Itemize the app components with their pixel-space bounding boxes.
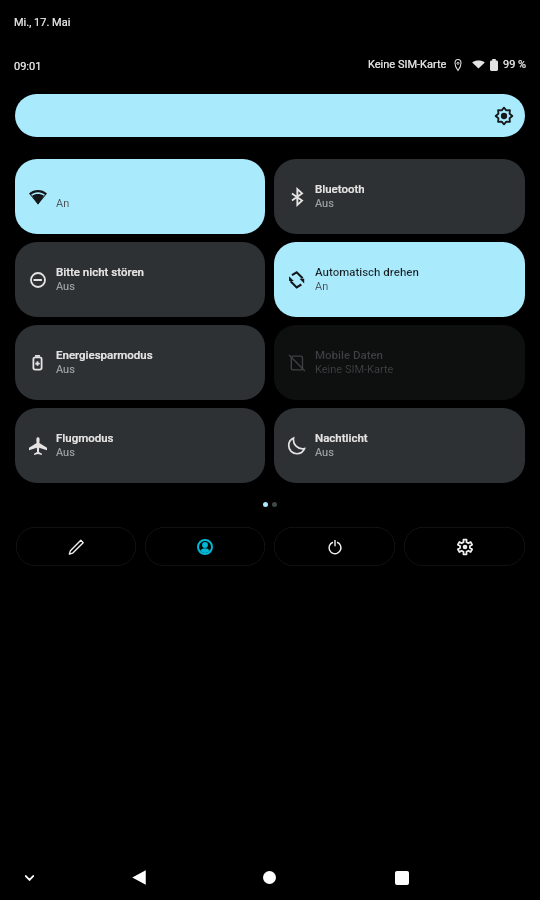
button[interactable]: Startbildschirm [251, 859, 288, 896]
staticText: Aus [56, 446, 75, 459]
staticText: Bluetooth [315, 182, 365, 195]
staticText: Aus [315, 446, 334, 459]
staticText: Nachtlicht [315, 431, 368, 444]
button[interactable]: Zurück [120, 859, 157, 896]
staticText: Aus [56, 363, 75, 376]
staticText: Mobile Daten [315, 348, 384, 361]
staticText: An [315, 280, 329, 293]
button[interactable]: Bearbeiten [16, 527, 136, 566]
staticText: 99 % [503, 58, 527, 71]
button[interactable]: Bluetooth [274, 159, 525, 234]
button[interactable]: Mobile Daten [274, 325, 525, 400]
button[interactable]: Automatisch drehen [274, 242, 525, 317]
staticText: Mi., 17. Mai [14, 16, 71, 29]
staticText: Energiesparmodus [56, 348, 153, 361]
staticText: Aus [315, 197, 334, 210]
staticText: 09:01 [14, 60, 42, 73]
button[interactable]: An [15, 159, 265, 234]
button[interactable]: Flugmodus [15, 408, 265, 483]
staticText: Automatisch drehen [315, 265, 419, 278]
button[interactable]: Einstellungen [404, 527, 525, 566]
button[interactable]: Ein/Aus [274, 527, 395, 566]
staticText: An [56, 197, 70, 210]
staticText: Keine SIM-Karte [368, 58, 447, 71]
button[interactable]: Einklappen [11, 859, 48, 896]
button[interactable]: Übersicht [383, 859, 420, 896]
button[interactable]: Helligkeit [15, 94, 525, 137]
button[interactable]: Energiesparmodus [15, 325, 265, 400]
button[interactable]: Nutzer [145, 527, 265, 566]
staticText: Bitte nicht stören [56, 265, 144, 278]
staticText: Flugmodus [56, 431, 114, 444]
staticText: Keine SIM-Karte [315, 363, 394, 376]
button[interactable]: Nachtlicht [274, 408, 525, 483]
button[interactable]: Bitte nicht stören [15, 242, 265, 317]
staticText: Aus [56, 280, 75, 293]
